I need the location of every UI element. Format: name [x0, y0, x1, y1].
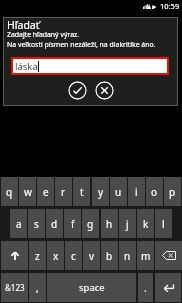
staticText: j: [126, 217, 129, 231]
button[interactable]: e: [37, 177, 54, 206]
staticText: &123: [5, 282, 25, 293]
staticText: a: [16, 217, 22, 231]
staticText: Zadajte hľadaný výraz.: [7, 30, 80, 39]
staticText: láska: [15, 60, 38, 73]
staticText: Hľadať: [7, 18, 40, 32]
button[interactable]: k: [137, 209, 154, 238]
button[interactable]: v: [83, 241, 100, 270]
button[interactable]: .: [138, 273, 153, 302]
button[interactable]: ,: [29, 273, 46, 302]
button[interactable]: t: [73, 177, 90, 206]
button[interactable]: g: [82, 209, 99, 238]
button[interactable]: p: [164, 177, 181, 206]
button[interactable]: i: [128, 177, 145, 206]
button[interactable]: &123: [1, 273, 28, 302]
staticText: c: [71, 249, 76, 263]
button[interactable]: s: [28, 209, 45, 238]
staticText: n: [124, 249, 131, 263]
button[interactable]: f: [64, 209, 81, 238]
staticText: s: [34, 217, 39, 231]
button[interactable]: q: [1, 177, 18, 206]
staticText: p: [169, 185, 176, 199]
button[interactable]: w: [19, 177, 36, 206]
staticText: r: [61, 185, 66, 199]
button[interactable]: Potvrdiť: [68, 81, 87, 100]
button[interactable]: Shift: [1, 241, 28, 270]
button[interactable]: r: [55, 177, 72, 206]
staticText: h: [106, 217, 113, 231]
button[interactable]: a: [10, 209, 27, 238]
staticText: ,: [36, 281, 39, 295]
button[interactable]: o: [146, 177, 163, 206]
staticText: g: [87, 217, 94, 231]
staticText: t: [80, 185, 84, 199]
button[interactable]: d: [46, 209, 63, 238]
button[interactable]: l: [155, 209, 172, 238]
staticText: k: [143, 217, 149, 231]
staticText: x: [53, 249, 59, 263]
staticText: i: [135, 185, 138, 199]
staticText: l: [162, 217, 165, 231]
button[interactable]: y: [92, 177, 109, 206]
button[interactable]: láska: [13, 59, 167, 73]
staticText: Na veľkosti písmen nezáleží, na diakriti…: [7, 40, 156, 49]
staticText: .: [144, 281, 147, 295]
button[interactable]: Zrušiť: [95, 81, 114, 100]
button[interactable]: n: [119, 241, 136, 270]
staticText: w: [24, 185, 32, 199]
staticText: z: [35, 249, 40, 263]
button[interactable]: x: [47, 241, 64, 270]
button[interactable]: z: [29, 241, 46, 270]
staticText: f: [71, 217, 75, 231]
staticText: d: [51, 217, 58, 231]
staticText: y: [98, 185, 104, 199]
staticText: 10:59: [160, 1, 180, 11]
staticText: u: [115, 185, 122, 199]
staticText: v: [89, 249, 95, 263]
staticText: o: [151, 185, 158, 199]
button[interactable]: h: [101, 209, 118, 238]
staticText: space: [79, 281, 105, 294]
button[interactable]: b: [101, 241, 118, 270]
staticText: b: [106, 249, 113, 263]
button[interactable]: Backspace: [155, 241, 182, 270]
button[interactable]: Enter: [155, 273, 181, 302]
staticText: m: [141, 249, 151, 263]
button[interactable]: u: [110, 177, 127, 206]
button[interactable]: space: [47, 273, 136, 302]
staticText: q: [6, 185, 13, 199]
button[interactable]: c: [65, 241, 82, 270]
staticText: e: [43, 185, 49, 199]
button[interactable]: m: [137, 241, 154, 270]
button[interactable]: j: [119, 209, 136, 238]
